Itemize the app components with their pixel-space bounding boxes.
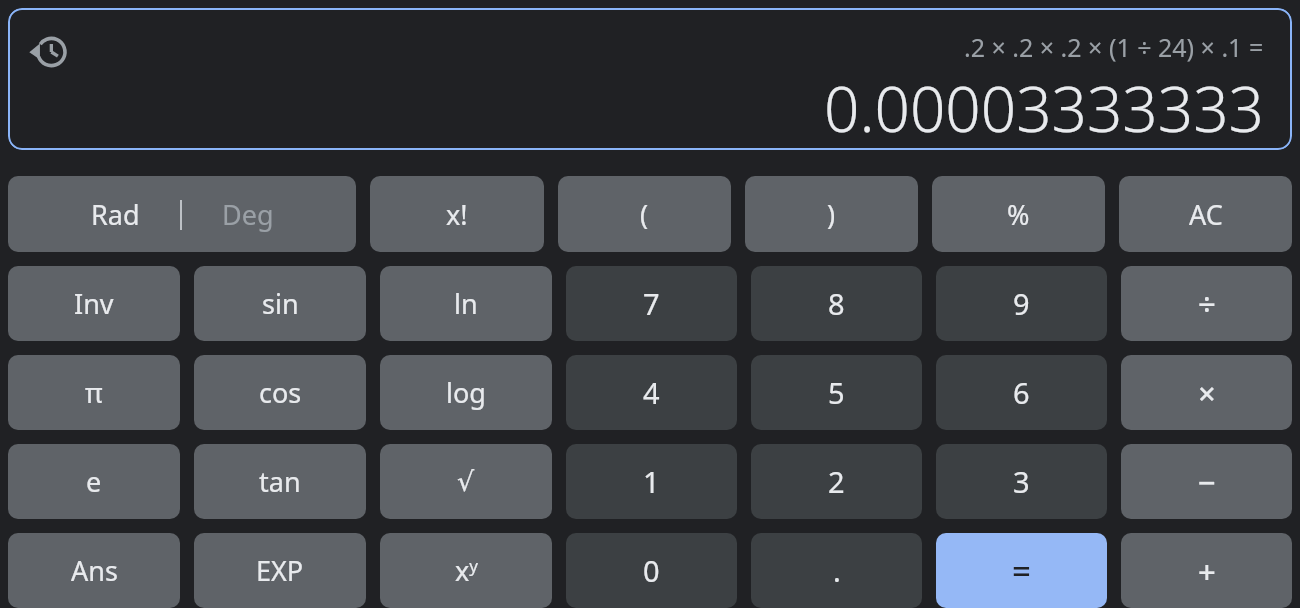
staticText: =: [1012, 548, 1031, 593]
staticText: 2: [828, 462, 845, 501]
staticText: 3: [1013, 462, 1030, 501]
staticText: Ans: [71, 552, 118, 589]
button[interactable]: .: [751, 533, 922, 608]
button[interactable]: (: [558, 176, 731, 252]
staticText: cos: [259, 374, 302, 411]
button[interactable]: ): [745, 176, 918, 252]
button[interactable]: 9: [936, 266, 1107, 341]
staticText: −: [1198, 461, 1216, 503]
staticText: √: [457, 466, 475, 497]
staticText: (: [640, 196, 649, 233]
button[interactable]: ÷: [1121, 266, 1292, 341]
staticText: tan: [259, 463, 301, 500]
button[interactable]: √: [380, 444, 552, 519]
staticText: log: [446, 374, 486, 411]
button[interactable]: 8: [751, 266, 922, 341]
button[interactable]: ×: [1121, 355, 1292, 430]
button[interactable]: Ans: [8, 533, 180, 608]
staticText: +: [1198, 550, 1216, 592]
staticText: ): [827, 196, 836, 233]
staticText: 7: [643, 284, 660, 323]
button[interactable]: +: [1121, 533, 1292, 608]
button[interactable]: sin: [194, 266, 366, 341]
staticText: Inv: [74, 285, 114, 322]
button[interactable]: 7: [566, 266, 737, 341]
button[interactable]: x!: [370, 176, 544, 252]
button[interactable]: =: [936, 533, 1107, 608]
staticText: Deg: [222, 196, 274, 233]
staticText: 8: [828, 284, 845, 323]
button[interactable]: AC: [1119, 176, 1292, 252]
staticText: ln: [454, 285, 478, 322]
button[interactable]: %: [932, 176, 1105, 252]
staticText: Rad: [91, 196, 140, 233]
button[interactable]: Inv: [8, 266, 180, 341]
button[interactable]: ln: [380, 266, 552, 341]
staticText: e: [86, 463, 102, 500]
button[interactable]: Rad: [8, 176, 356, 252]
button[interactable]: 0: [566, 533, 737, 608]
button[interactable]: History: [28, 30, 72, 74]
staticText: π: [85, 374, 103, 411]
button[interactable]: 1: [566, 444, 737, 519]
staticText: .: [833, 551, 841, 590]
button[interactable]: EXP: [194, 533, 366, 608]
staticText: 0.00003333333: [824, 66, 1264, 150]
staticText: ×: [1198, 372, 1216, 414]
staticText: 1: [643, 462, 660, 501]
staticText: 6: [1013, 373, 1030, 412]
staticText: EXP: [256, 552, 304, 589]
button[interactable]: xy: [380, 533, 552, 608]
button[interactable]: log: [380, 355, 552, 430]
button[interactable]: 2: [751, 444, 922, 519]
staticText: 9: [1013, 284, 1030, 323]
button[interactable]: 3: [936, 444, 1107, 519]
button[interactable]: tan: [194, 444, 366, 519]
staticText: 5: [828, 373, 845, 412]
button[interactable]: 4: [566, 355, 737, 430]
staticText: 0: [643, 551, 660, 590]
staticText: .2 × .2 × .2 × (1 ÷ 24) × .1 =: [964, 30, 1264, 64]
staticText: xy: [455, 552, 478, 589]
staticText: x!: [446, 196, 468, 233]
button[interactable]: −: [1121, 444, 1292, 519]
staticText: sin: [262, 285, 299, 322]
staticText: AC: [1189, 196, 1223, 233]
staticText: 4: [643, 373, 660, 412]
staticText: %: [1007, 196, 1030, 233]
button[interactable]: 5: [751, 355, 922, 430]
button[interactable]: π: [8, 355, 180, 430]
button[interactable]: e: [8, 444, 180, 519]
button[interactable]: 6: [936, 355, 1107, 430]
staticText: ÷: [1198, 283, 1216, 325]
button[interactable]: cos: [194, 355, 366, 430]
